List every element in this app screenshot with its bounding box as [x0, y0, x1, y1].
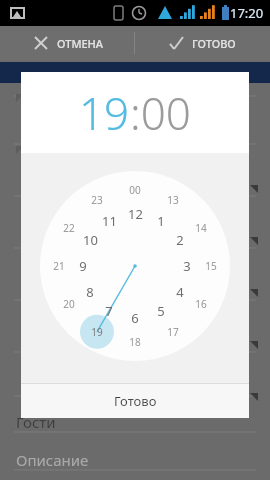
staticText: 17:20 — [230, 4, 264, 22]
staticText: 9 — [79, 257, 87, 275]
staticText: 19 — [79, 83, 130, 143]
staticText: ГОТОВО — [192, 36, 236, 51]
staticText: 2 — [176, 231, 184, 249]
staticText: 8 — [86, 283, 94, 301]
staticText: 5 — [157, 302, 165, 320]
button[interactable]: ГОТОВО — [135, 26, 270, 60]
button[interactable]: Готово — [21, 384, 249, 418]
staticText: 6 — [131, 309, 139, 327]
staticText: Описание — [16, 450, 89, 470]
staticText: 15 — [205, 259, 217, 273]
staticText: ОТМЕНА — [57, 36, 104, 51]
staticText: 4 — [176, 283, 184, 301]
staticText: 3 — [183, 257, 191, 275]
staticText: 23 — [91, 193, 103, 207]
staticText: :00 — [130, 83, 191, 143]
staticText: 10 — [83, 231, 98, 249]
staticText: 18 — [129, 335, 141, 349]
staticText: 19 — [91, 325, 103, 339]
staticText: 22 — [63, 221, 75, 235]
staticText: 20 — [63, 297, 75, 311]
staticText: 1 — [157, 212, 165, 230]
staticText: 7 — [105, 302, 113, 320]
staticText: 14 — [195, 221, 207, 235]
staticText: 11 — [102, 212, 117, 230]
staticText: 13 — [167, 193, 179, 207]
staticText: 12 — [128, 205, 143, 223]
staticText: 21 — [53, 259, 65, 273]
staticText: Гости — [16, 412, 56, 432]
staticText: 00 — [129, 183, 141, 197]
button[interactable]: ОТМЕНА — [0, 26, 134, 60]
staticText: Готово — [114, 392, 157, 410]
staticText: 17 — [167, 325, 179, 339]
staticText: 16 — [195, 297, 207, 311]
button[interactable]: 00 — [21, 153, 249, 383]
